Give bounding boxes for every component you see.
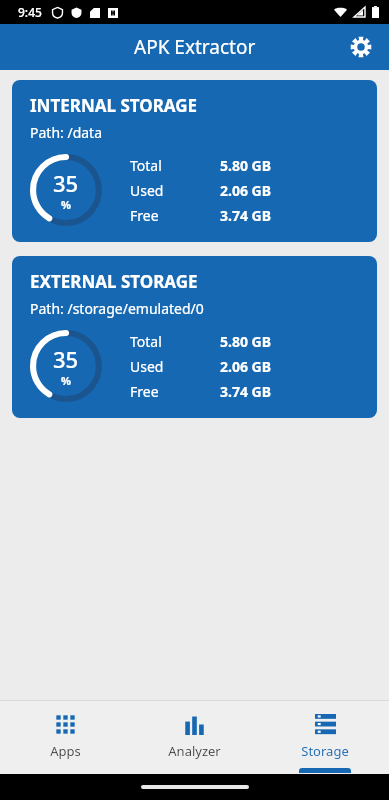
staticText: Used xyxy=(130,357,220,376)
staticText: 2.06 GB xyxy=(220,181,272,200)
staticText: % xyxy=(61,197,71,212)
staticText: Used xyxy=(130,181,220,200)
staticText: 5.80 GB xyxy=(220,156,272,175)
staticText: EXTERNAL STORAGE xyxy=(30,270,198,293)
staticText: Free xyxy=(130,382,220,401)
staticText: 35 xyxy=(53,168,79,198)
staticText: Total xyxy=(130,332,220,351)
staticText: 5.80 GB xyxy=(220,332,272,351)
staticText: 2.06 GB xyxy=(220,357,272,376)
staticText: INTERNAL STORAGE xyxy=(30,94,198,117)
staticText: 9:45 xyxy=(18,4,42,20)
staticText: 3.74 GB xyxy=(220,382,272,401)
button[interactable]: Storage xyxy=(260,700,389,774)
staticText: Analyzer xyxy=(168,742,221,760)
button[interactable]: Apps xyxy=(1,700,130,774)
staticText: 3.74 GB xyxy=(220,206,272,225)
staticText: Storage xyxy=(301,742,349,760)
staticText: Free xyxy=(130,206,220,225)
staticText: Apps xyxy=(50,742,81,760)
button[interactable]: EXTERNAL STORAGE xyxy=(12,256,377,418)
staticText: 35 xyxy=(53,344,79,374)
staticText: Total xyxy=(130,156,220,175)
button[interactable]: INTERNAL STORAGE xyxy=(12,80,377,242)
button[interactable]: Analyzer xyxy=(130,700,259,774)
staticText: APK Extractor xyxy=(134,34,256,60)
staticText: % xyxy=(61,373,71,388)
staticText: Path: /storage/emulated/0 xyxy=(30,299,204,318)
staticText: Path: /data xyxy=(30,123,103,142)
button[interactable]: Settings xyxy=(341,27,381,67)
